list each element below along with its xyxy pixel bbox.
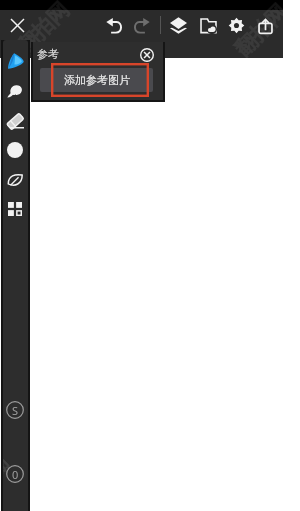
staticText: 翻拍网 <box>229 0 283 58</box>
button[interactable]: Fill <box>3 138 27 162</box>
button[interactable]: Opacity <box>3 462 27 486</box>
staticText: 翻拍网 <box>3 447 15 483</box>
button[interactable]: Grid <box>3 197 27 221</box>
button[interactable]: Share <box>253 13 277 37</box>
button[interactable]: Close <box>5 13 29 37</box>
staticText: 添加参考图片 <box>64 73 130 87</box>
button[interactable]: Eraser <box>3 109 27 133</box>
button[interactable]: Close panel <box>138 46 156 64</box>
button[interactable]: Leaf <box>3 168 27 192</box>
button[interactable]: Smudge <box>3 79 27 103</box>
button[interactable]: Layers <box>166 13 190 37</box>
staticText: 参考 <box>37 47 59 61</box>
button[interactable]: Gallery <box>196 13 220 37</box>
staticText: S <box>12 403 19 418</box>
button[interactable]: Settings <box>224 13 248 37</box>
staticText: 翻拍网 <box>11 0 74 58</box>
button[interactable]: Redo <box>129 13 153 37</box>
button[interactable]: 添加参考图片 <box>40 68 153 92</box>
button[interactable]: Symmetry <box>3 398 27 422</box>
button[interactable]: Undo <box>102 13 126 37</box>
staticText: 0 <box>12 467 19 482</box>
button[interactable]: Brush <box>3 49 27 73</box>
